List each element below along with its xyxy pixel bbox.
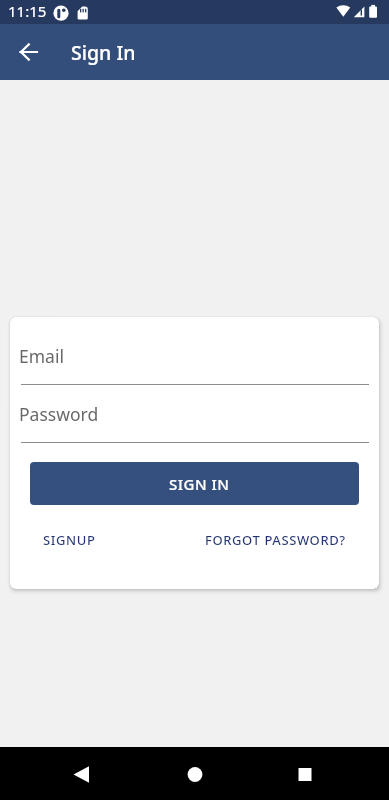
staticText: 11:15: [8, 1, 47, 21]
button[interactable]: SIGNUP: [36, 524, 103, 556]
staticText: Email: [19, 344, 64, 368]
staticText: Sign In: [71, 39, 136, 66]
button[interactable]: SIGN IN: [30, 462, 359, 505]
button[interactable]: FORGOT PASSWORD?: [198, 524, 353, 556]
button[interactable]: [12, 35, 46, 69]
button[interactable]: [259, 747, 389, 800]
button[interactable]: [0, 747, 129, 800]
staticText: SIGN IN: [169, 474, 230, 494]
staticText: FORGOT PASSWORD?: [205, 531, 346, 549]
staticText: SIGNUP: [43, 531, 96, 549]
button[interactable]: [129, 747, 259, 800]
staticText: Password: [19, 402, 99, 426]
button[interactable]: [21, 339, 369, 385]
button[interactable]: [21, 397, 369, 443]
